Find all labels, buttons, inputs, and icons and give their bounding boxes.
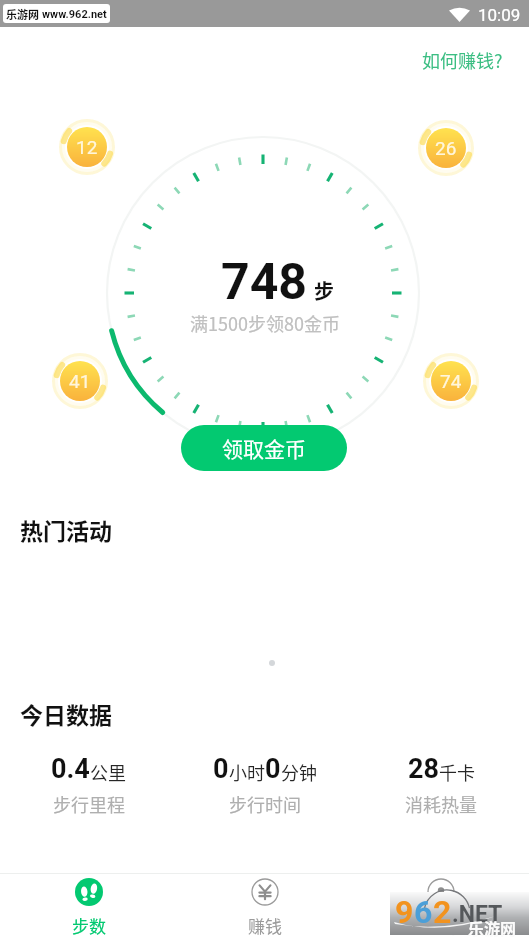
staticText: 28 xyxy=(408,753,439,785)
staticText: 今日数据 xyxy=(20,697,112,730)
staticText: 分钟 xyxy=(281,759,317,785)
staticText: 10:09 xyxy=(478,5,521,25)
button[interactable]: 如何赚钱? xyxy=(410,41,515,79)
staticText: 步 xyxy=(314,276,334,305)
staticText: 步行时间 xyxy=(229,791,301,817)
button[interactable]: 步数 xyxy=(0,874,177,941)
staticText: 满1500步领80金币 xyxy=(190,310,340,336)
button[interactable]: 领取金币 xyxy=(181,425,347,471)
staticText: 领取金币 xyxy=(222,433,306,463)
staticText: 0 xyxy=(265,753,281,785)
staticText: 赚钱 xyxy=(248,913,282,938)
staticText: 41 xyxy=(69,370,91,392)
staticText: 公里 xyxy=(90,759,126,785)
staticText: 74 xyxy=(440,370,462,392)
button[interactable]: Reward coin 12 xyxy=(59,119,115,175)
staticText: 0.4 xyxy=(51,753,90,785)
staticText: 热门活动 xyxy=(20,513,112,546)
staticText: www.962.net xyxy=(42,8,107,21)
staticText: 2 xyxy=(433,893,452,931)
staticText: 26 xyxy=(435,137,457,159)
staticText: 我的 xyxy=(424,913,458,938)
staticText: 12 xyxy=(76,136,98,158)
staticText: 748 xyxy=(221,253,308,312)
staticText: 0 xyxy=(213,753,229,785)
staticText: 如何赚钱? xyxy=(422,47,503,73)
button[interactable]: Reward coin 41 xyxy=(52,353,108,409)
button[interactable]: Reward coin 74 xyxy=(423,353,479,409)
staticText: 步行里程 xyxy=(53,791,125,817)
staticText: 乐游网 xyxy=(6,6,39,22)
staticText: 乐游网 xyxy=(468,916,517,939)
staticText: 6 xyxy=(414,893,433,931)
button[interactable]: 我的 xyxy=(353,874,529,941)
staticText: 千卡 xyxy=(439,759,475,785)
staticText: 消耗热量 xyxy=(405,791,477,817)
staticText: .NET xyxy=(452,901,503,928)
button[interactable]: 赚钱 xyxy=(177,874,353,941)
button[interactable]: Reward coin 26 xyxy=(418,120,474,176)
staticText: 小时 xyxy=(229,759,265,785)
staticText: 9 xyxy=(395,893,414,931)
staticText: 步数 xyxy=(72,913,106,938)
